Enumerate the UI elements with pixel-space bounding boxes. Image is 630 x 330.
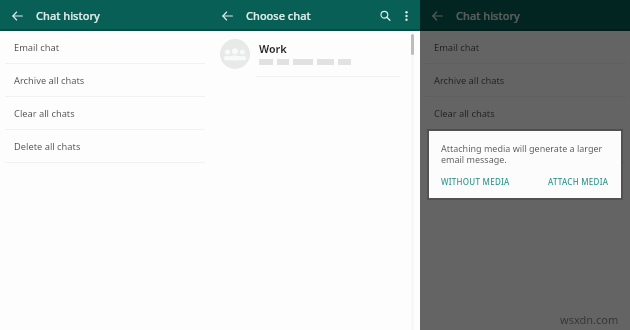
staticText: Clear all chats: [14, 107, 75, 120]
staticText: Work: [259, 42, 287, 56]
staticText: WITHOUT MEDIA: [441, 176, 510, 187]
button[interactable]: Archive all chats: [420, 64, 630, 96]
staticText: Clear all chats: [434, 107, 495, 120]
staticText: Delete all chats: [434, 140, 501, 153]
staticText: Attaching media will generate a larger e…: [441, 142, 609, 166]
staticText: wsxdn.com: [560, 312, 619, 327]
staticText: Delete all chats: [14, 140, 81, 153]
staticText: Email chat: [14, 41, 60, 54]
button[interactable]: Back: [420, 0, 455, 31]
button[interactable]: Clear all chats: [0, 97, 210, 129]
staticText: Email chat: [434, 41, 480, 54]
button[interactable]: Work: [210, 31, 420, 76]
button[interactable]: Delete all chats: [0, 130, 210, 162]
button[interactable]: Archive all chats: [0, 64, 210, 96]
button[interactable]: Email chat: [0, 31, 210, 63]
button[interactable]: Clear all chats: [420, 97, 630, 129]
staticText: Choose chat: [246, 8, 311, 23]
staticText: ATTACH MEDIA: [548, 176, 609, 187]
button[interactable]: Delete all chats: [420, 130, 630, 162]
button[interactable]: Back: [0, 0, 35, 31]
staticText: Archive all chats: [434, 74, 505, 87]
button[interactable]: More options: [397, 0, 415, 31]
button[interactable]: ATTACH MEDIA: [548, 176, 609, 187]
button[interactable]: Search: [373, 0, 397, 31]
staticText: Archive all chats: [14, 74, 85, 87]
button[interactable]: Email chat: [420, 31, 630, 63]
staticText: Chat history: [456, 8, 520, 23]
button[interactable]: WITHOUT MEDIA: [441, 176, 510, 187]
staticText: Chat history: [36, 8, 100, 23]
button[interactable]: Back: [210, 0, 245, 31]
